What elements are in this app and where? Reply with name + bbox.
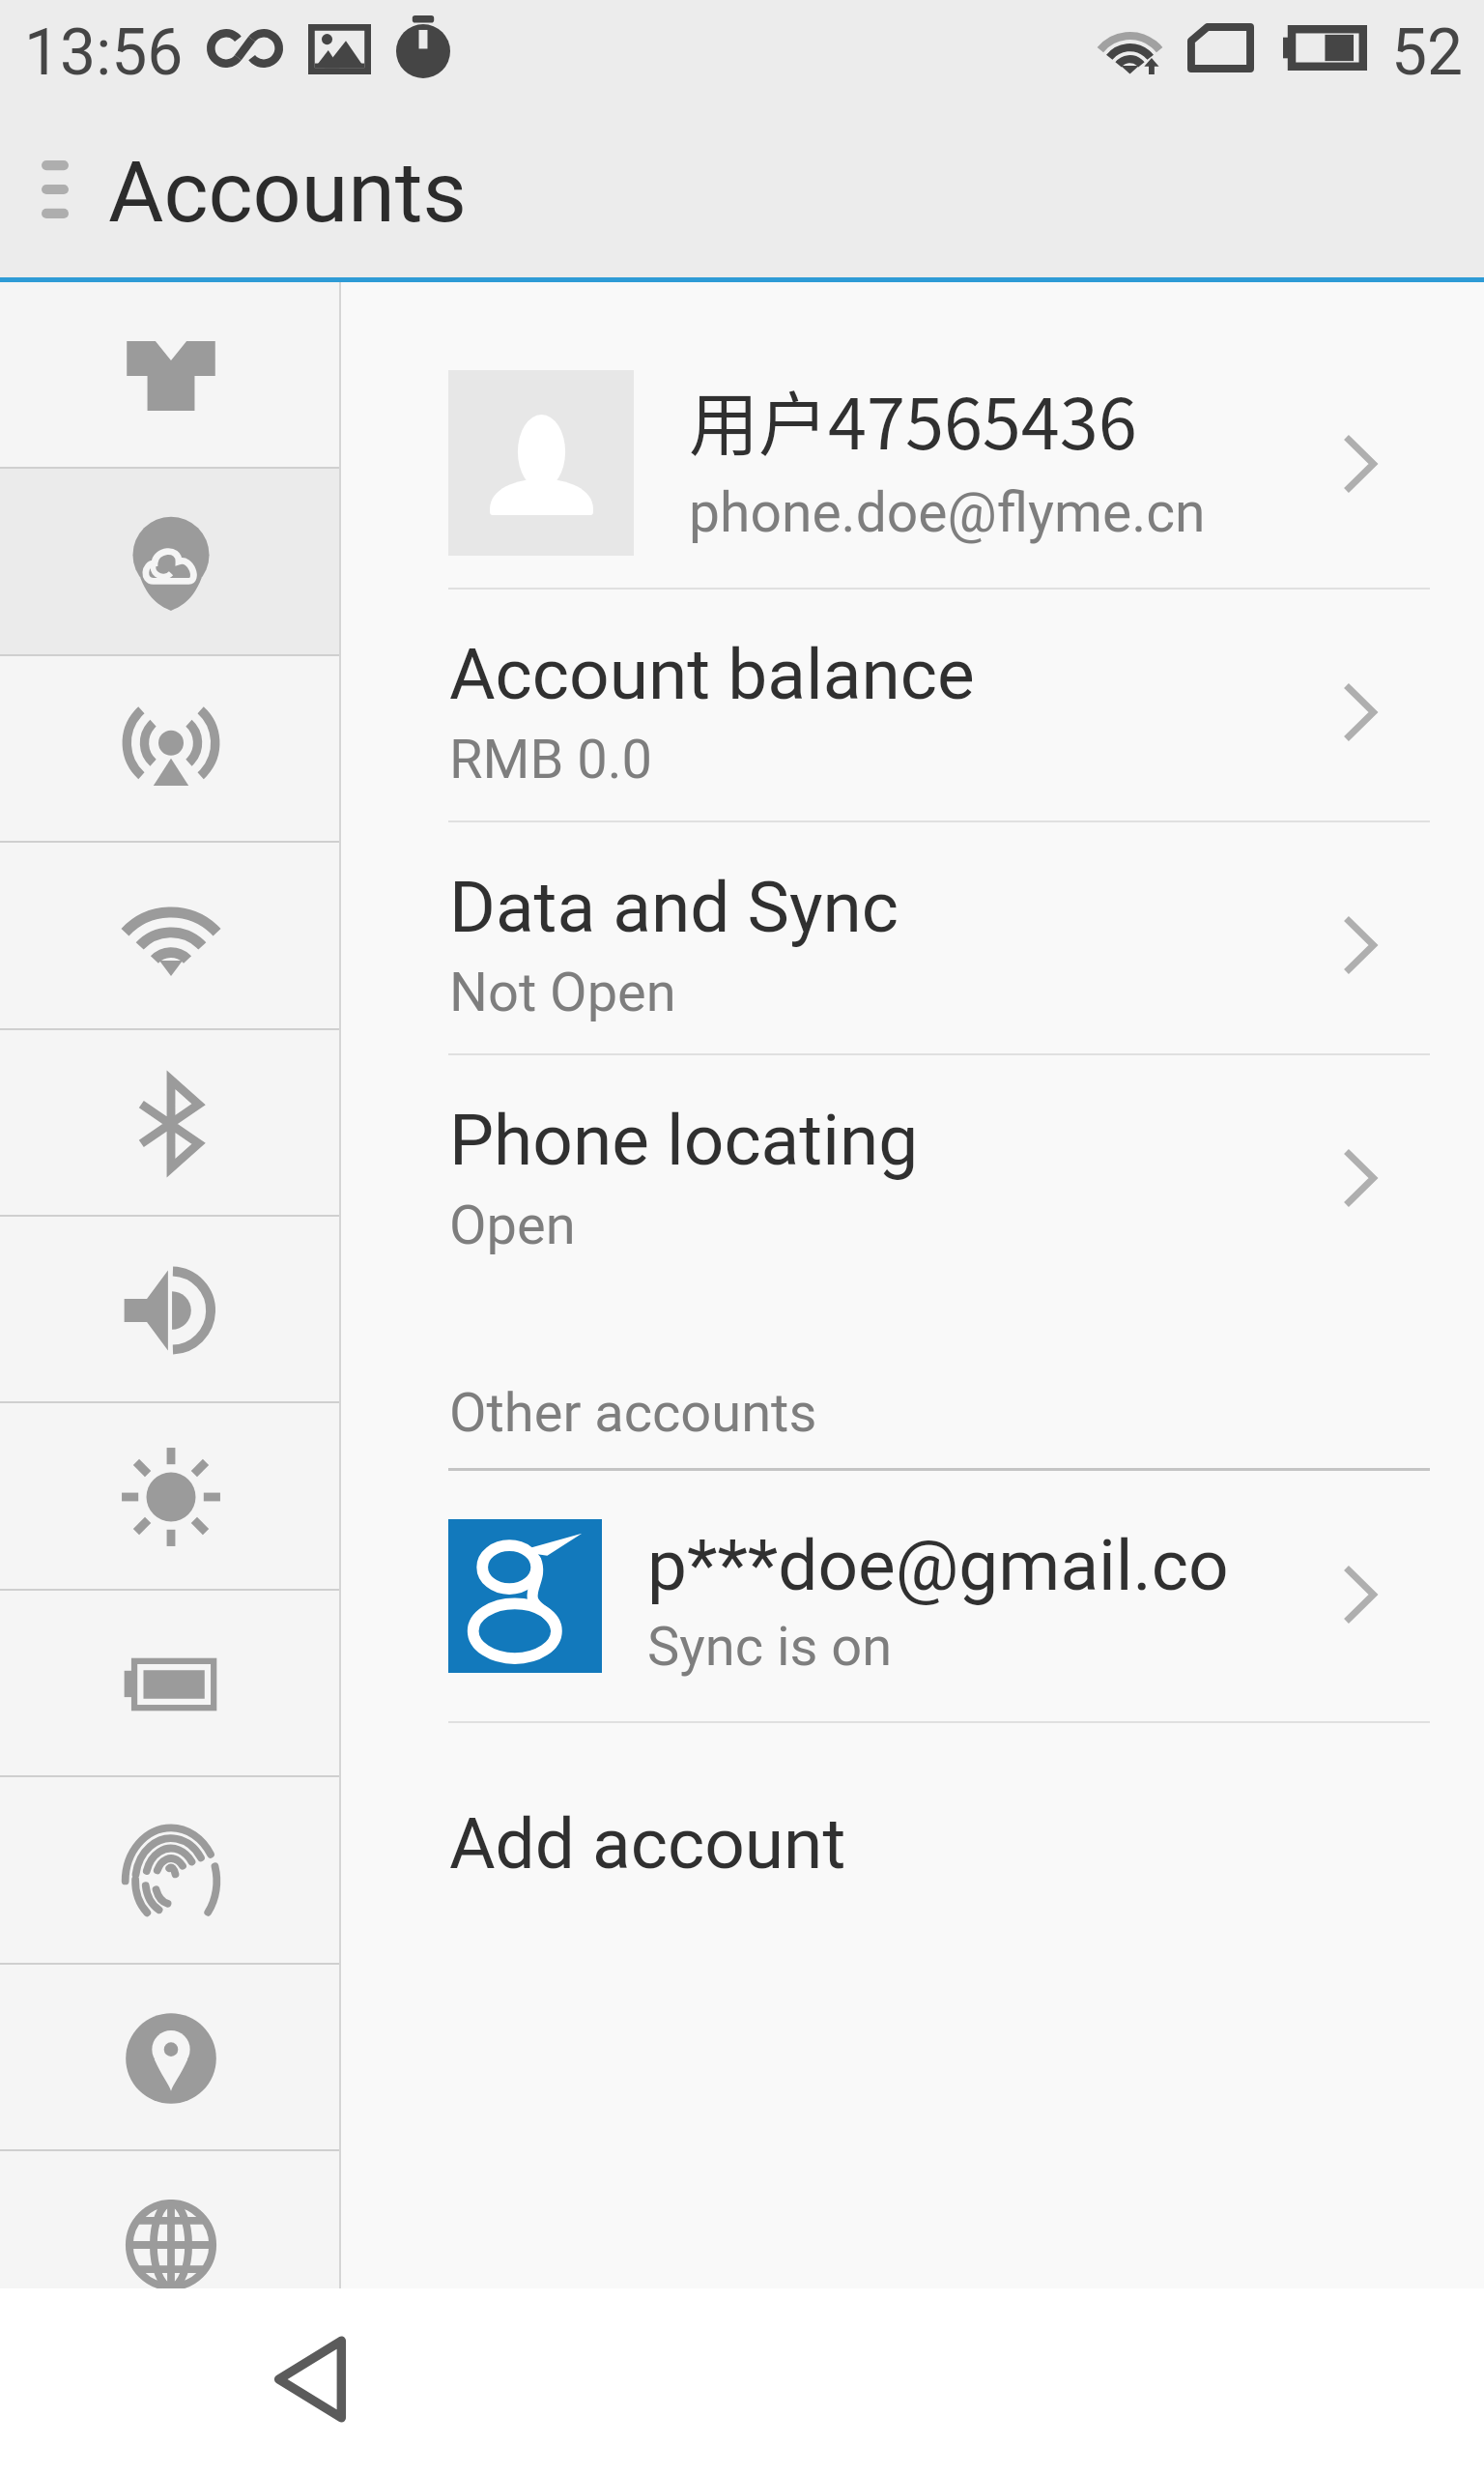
staticText: Open [449,1194,576,1257]
button[interactable]: Account balance [341,590,1484,820]
staticText: RMB 0.0 [449,728,652,791]
button[interactable]: Language [0,2151,341,2288]
button[interactable]: Display [0,282,341,469]
staticText: Other accounts [449,1381,817,1445]
staticText: Not Open [449,961,676,1024]
staticText: Phone locating [449,1099,919,1182]
button[interactable]: Location [0,1965,341,2151]
button[interactable]: Account [0,469,341,655]
button[interactable]: Brightness [0,1403,341,1590]
button[interactable]: Back [242,2314,377,2449]
button[interactable]: Bluetooth [0,1030,341,1217]
staticText: p***doe@gmail.co [647,1524,1229,1607]
staticText: Sync is on [647,1615,893,1679]
button[interactable]: Data and Sync [341,822,1484,1053]
staticText: Add account [449,1802,846,1885]
button[interactable]: 用户47565436 [341,282,1484,588]
staticText: 用户47565436 [689,368,1137,469]
button[interactable]: Wi-Fi [0,843,341,1029]
staticText: Data and Sync [449,866,899,949]
button[interactable]: Battery [0,1591,341,1777]
staticText: 13:56 [24,15,184,90]
button[interactable]: Fingerprint [0,1777,341,1964]
button[interactable]: Mobile network [0,656,341,843]
button[interactable]: p***doe@gmail.co [341,1471,1484,1721]
button[interactable]: Add account [341,1723,1484,1943]
staticText: phone.doe@flyme.cn [689,480,1206,545]
staticText: 52 [1391,15,1464,90]
button[interactable]: Sound [0,1217,341,1403]
staticText: Accounts [108,142,468,242]
button[interactable]: Phone locating [341,1055,1484,1286]
staticText: Account balance [449,633,975,716]
button[interactable]: Menu [0,112,110,277]
